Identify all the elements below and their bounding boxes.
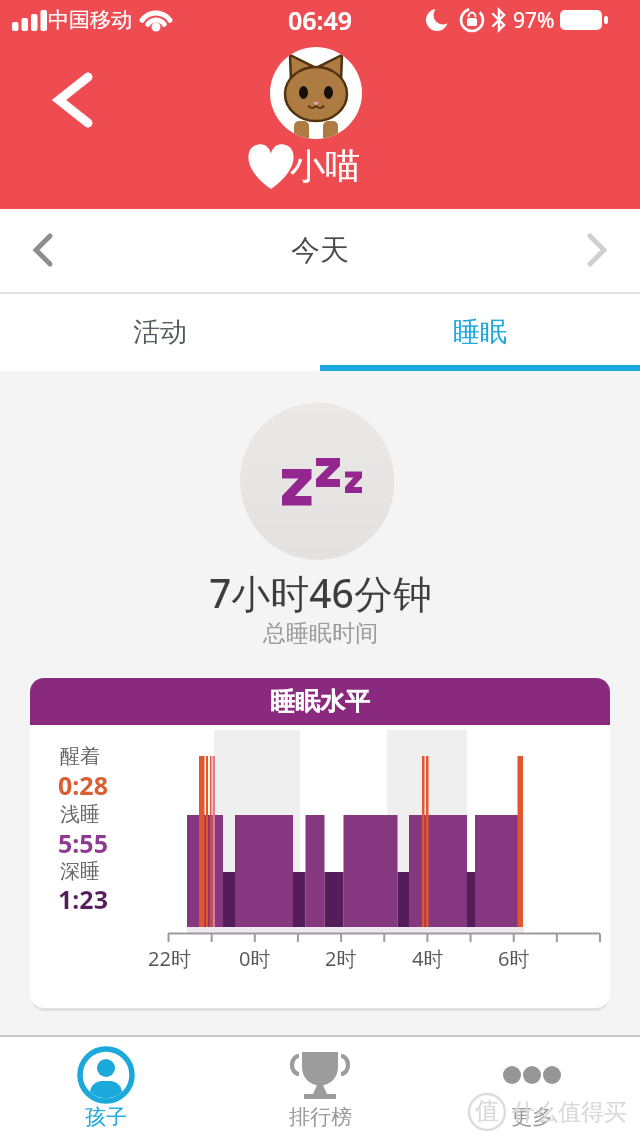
staticText: 5:55 bbox=[58, 826, 108, 856]
staticText: 1:23 bbox=[58, 882, 108, 912]
staticText: 2时 bbox=[325, 945, 357, 972]
staticText: 睡眠水平 bbox=[270, 686, 370, 717]
button[interactable] bbox=[427, 1037, 640, 1136]
button[interactable] bbox=[270, 47, 362, 139]
button[interactable] bbox=[35, 65, 105, 135]
staticText: 今天 bbox=[291, 232, 349, 269]
staticText: 6时 bbox=[498, 945, 530, 972]
staticText: 0时 bbox=[239, 945, 271, 972]
staticText: 小喵 bbox=[290, 144, 360, 188]
staticText: 醒着 bbox=[60, 744, 100, 769]
staticText: 总睡眠时间 bbox=[263, 619, 378, 648]
staticText: 06:49 bbox=[288, 3, 353, 37]
staticText: 深睡 bbox=[60, 859, 100, 884]
staticText: 什么值得买 bbox=[512, 1098, 627, 1127]
button[interactable] bbox=[0, 294, 320, 371]
staticText: 0:28 bbox=[58, 768, 108, 798]
button[interactable] bbox=[570, 225, 620, 275]
button[interactable] bbox=[20, 225, 70, 275]
button[interactable] bbox=[0, 1037, 213, 1136]
staticText: 活动 bbox=[133, 315, 187, 349]
staticText: 4时 bbox=[412, 945, 444, 972]
staticText: 睡眠 bbox=[453, 315, 507, 349]
staticText: 排行榜 bbox=[289, 1104, 352, 1130]
staticText: 更多 bbox=[511, 1104, 553, 1130]
staticText: 22时 bbox=[148, 945, 191, 972]
staticText: 值 bbox=[475, 1096, 499, 1126]
staticText: 浅睡 bbox=[60, 802, 100, 827]
staticText: 97% bbox=[513, 6, 555, 35]
staticText: 孩子 bbox=[85, 1104, 127, 1130]
staticText: 7小时46分钟 bbox=[209, 566, 432, 618]
staticText: 中国移动 bbox=[48, 7, 132, 33]
button[interactable] bbox=[320, 294, 640, 371]
button[interactable] bbox=[213, 1037, 427, 1136]
